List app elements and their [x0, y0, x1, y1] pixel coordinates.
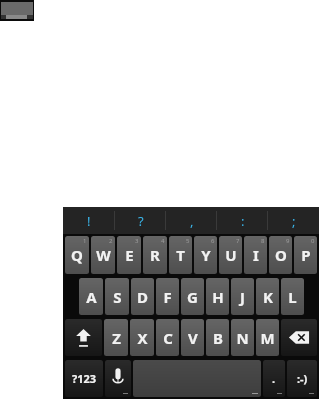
button[interactable]: E	[117, 236, 141, 274]
button[interactable]: R	[143, 236, 167, 274]
button[interactable]: P	[294, 236, 317, 274]
button[interactable]: X	[130, 319, 154, 356]
staticText: 4	[161, 237, 165, 245]
staticText: U	[225, 245, 237, 265]
staticText: ?	[138, 212, 144, 230]
button[interactable]: G	[181, 278, 204, 315]
staticText: ?123	[72, 371, 97, 386]
button[interactable]: Y	[194, 236, 217, 274]
button[interactable]: Z	[104, 319, 128, 356]
button[interactable]: L	[281, 278, 304, 315]
staticText: K	[263, 287, 273, 307]
button[interactable]: K	[256, 278, 279, 315]
staticText: 9	[286, 237, 290, 245]
button[interactable]: ,	[166, 207, 217, 234]
button[interactable]: A	[79, 278, 103, 315]
staticText: 1	[83, 237, 87, 245]
staticText: J	[240, 287, 245, 307]
staticText: ;	[292, 212, 296, 230]
staticText: N	[236, 328, 249, 348]
staticText: 5	[186, 237, 190, 245]
button[interactable]: ?	[115, 207, 166, 234]
staticText: ,	[190, 212, 194, 230]
staticText: 7	[236, 237, 240, 245]
staticText: :	[241, 212, 245, 230]
button[interactable]: C	[156, 319, 179, 356]
button[interactable]: V	[181, 319, 204, 356]
staticText: R	[150, 245, 160, 265]
staticText: 0	[311, 237, 315, 245]
button[interactable]: ;	[268, 207, 319, 234]
staticText: A	[86, 287, 97, 307]
button[interactable]: ?123	[65, 360, 103, 397]
staticText: F	[163, 287, 172, 307]
button[interactable]: O	[269, 236, 292, 274]
button[interactable]: B	[206, 319, 229, 356]
button[interactable]: Shift	[65, 319, 102, 356]
button[interactable]: W	[91, 236, 115, 274]
staticText: X	[137, 328, 148, 348]
staticText: .	[272, 371, 276, 386]
staticText: S	[113, 287, 122, 307]
staticText: !	[87, 212, 91, 230]
staticText: Y	[201, 245, 211, 265]
staticText: L	[288, 287, 297, 307]
button[interactable]: Space	[133, 360, 261, 397]
button[interactable]: F	[156, 278, 179, 315]
button[interactable]: !	[63, 207, 115, 234]
button[interactable]: :-)	[287, 360, 317, 397]
button[interactable]: S	[105, 278, 129, 315]
button[interactable]: :	[217, 207, 268, 234]
staticText: C	[163, 328, 173, 348]
staticText: D	[137, 287, 148, 307]
button[interactable]: H	[206, 278, 229, 315]
button[interactable]: T	[169, 236, 192, 274]
staticText: P	[301, 245, 311, 265]
staticText: O	[275, 245, 287, 265]
staticText: :-)	[297, 371, 308, 386]
staticText: H	[212, 287, 224, 307]
staticText: T	[176, 245, 185, 265]
button[interactable]: M	[256, 319, 279, 356]
staticText: M	[260, 328, 275, 348]
button[interactable]: Backspace	[281, 319, 317, 356]
button[interactable]: Voice input	[105, 360, 131, 397]
staticText: 3	[135, 237, 139, 245]
button[interactable]: U	[219, 236, 242, 274]
button[interactable]: D	[131, 278, 154, 315]
button[interactable]: J	[231, 278, 254, 315]
button[interactable]: Q	[65, 236, 89, 274]
button[interactable]: N	[231, 319, 254, 356]
button[interactable]: I	[244, 236, 267, 274]
staticText: I	[253, 245, 259, 265]
staticText: E	[125, 245, 134, 265]
staticText: B	[213, 328, 223, 348]
staticText: 2	[109, 237, 113, 245]
staticText: W	[96, 245, 111, 265]
staticText: 6	[211, 237, 215, 245]
staticText: G	[187, 287, 198, 307]
staticText: Q	[71, 245, 83, 265]
staticText: V	[188, 328, 198, 348]
staticText: Z	[112, 328, 121, 348]
staticText: 8	[261, 237, 265, 245]
button[interactable]: .	[263, 360, 285, 397]
